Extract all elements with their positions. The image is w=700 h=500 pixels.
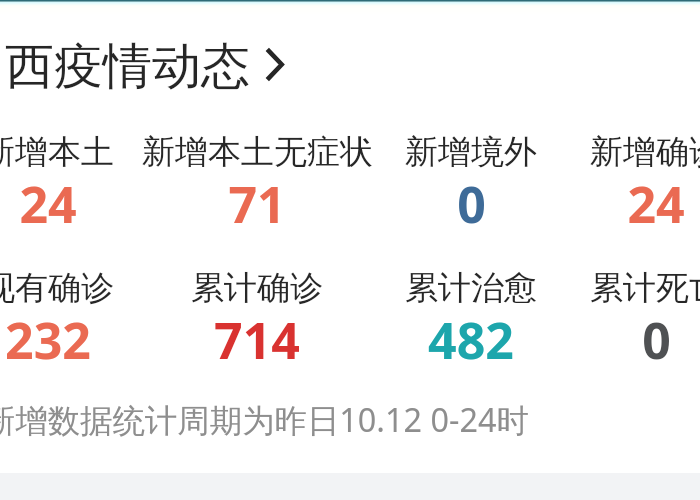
staticText: 71 [228,170,286,238]
other: Open epidemic details [265,47,284,82]
staticText: 24 [627,170,685,238]
staticText: 新增数据统计周期为昨日10.12 0-24时 [0,397,529,441]
button[interactable]: 西疫情动态 [5,36,284,92]
staticText: 西疫情动态 [5,36,250,92]
button[interactable]: 新增确诊 [563,126,700,224]
staticText: 24 [19,170,77,238]
staticText: 现有确诊 [0,267,114,309]
staticText: 232 [5,306,91,374]
staticText: 482 [428,306,514,374]
staticText: 0 [457,170,486,238]
button[interactable]: 新增境外 [378,126,564,224]
button[interactable]: 新增本土无症状 [164,126,350,224]
staticText: 新增境外 [405,131,537,173]
staticText: 0 [642,306,671,374]
staticText: 新增本土无症状 [142,131,373,173]
staticText: 累计确诊 [191,267,323,309]
staticText: 新增确诊 [590,131,700,173]
button[interactable]: 累计治愈 [378,262,564,360]
button[interactable]: 现有确诊 [0,262,141,360]
staticText: 累计死亡 [590,267,700,309]
staticText: 新增本土 [0,131,114,173]
button[interactable]: 累计确诊 [164,262,350,360]
button[interactable]: 累计死亡 [563,262,700,360]
staticText: 714 [214,306,300,374]
staticText: 累计治愈 [405,267,537,309]
button[interactable]: 新增本土 [0,126,141,224]
